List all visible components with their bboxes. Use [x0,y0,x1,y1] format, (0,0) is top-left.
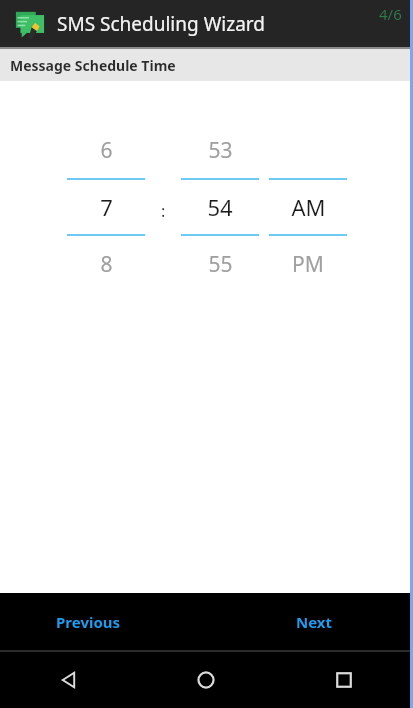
button[interactable]: Back [0,652,137,708]
staticText: PM [292,250,324,279]
staticText: 8 [100,250,113,279]
button[interactable]: Previous [34,603,143,641]
staticText: Previous [56,612,121,632]
button[interactable]: Select AM [264,122,352,292]
button[interactable]: Recent apps [275,652,413,708]
button[interactable]: Select 7 [62,122,150,292]
staticText: 55 [208,250,233,279]
staticText: SMS Scheduling Wizard [57,11,265,37]
staticText: 6 [100,136,113,165]
button[interactable]: Next [274,603,355,641]
staticText: 7 [100,192,113,222]
staticText: Message Schedule Time [10,56,176,75]
staticText: 53 [208,136,233,165]
staticText: AM [291,192,326,222]
staticText: : [161,200,166,222]
staticText: 54 [207,192,233,222]
staticText: Next [296,612,333,632]
button[interactable]: Home [137,652,275,708]
button[interactable]: Select 54 [176,122,264,292]
staticText: 4/6 [379,4,402,24]
